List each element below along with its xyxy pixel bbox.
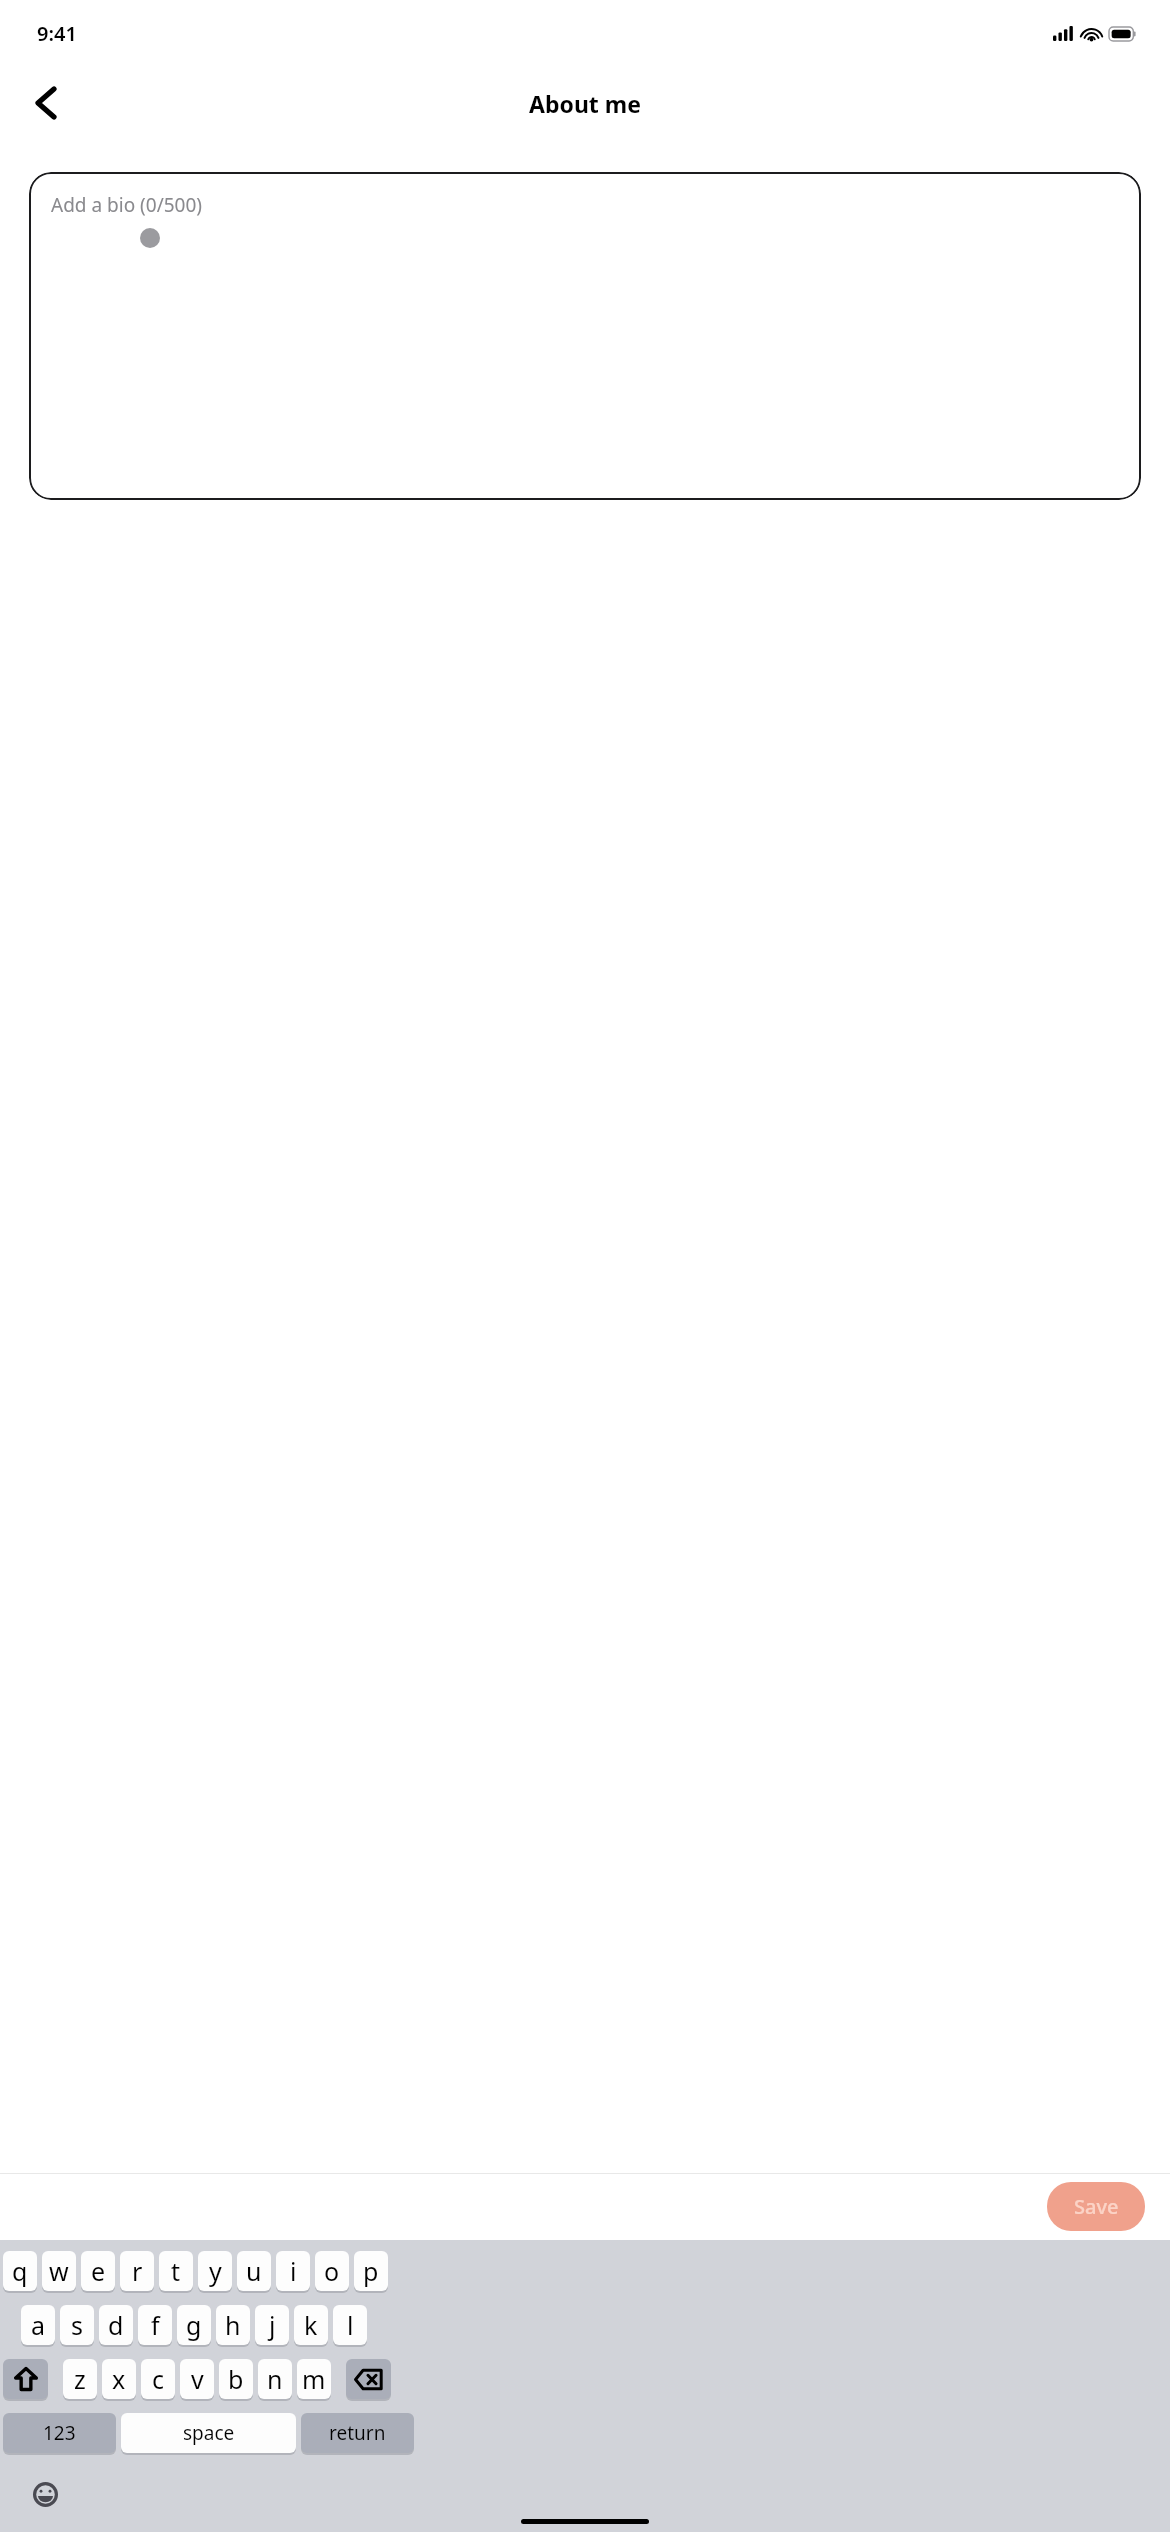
button[interactable]: n — [258, 2359, 292, 2401]
staticText: j — [269, 2308, 276, 2342]
button[interactable]: q — [3, 2251, 37, 2293]
staticText: c — [152, 2362, 165, 2396]
button[interactable]: i — [276, 2251, 310, 2293]
button[interactable]: e — [81, 2251, 115, 2293]
button[interactable]: v — [180, 2359, 214, 2401]
other: Backspace — [346, 2359, 391, 2401]
button[interactable]: b — [219, 2359, 253, 2401]
staticText: q — [12, 2254, 28, 2288]
button[interactable]: g — [177, 2305, 211, 2347]
staticText: l — [347, 2308, 354, 2342]
button[interactable] — [346, 2359, 391, 2401]
staticText: f — [151, 2308, 160, 2342]
button[interactable]: Emoji keyboard — [22, 2471, 68, 2517]
staticText: return — [329, 2420, 386, 2446]
button[interactable]: p — [354, 2251, 388, 2293]
button[interactable]: l — [333, 2305, 367, 2347]
staticText: d — [108, 2308, 124, 2342]
staticText: o — [324, 2254, 340, 2288]
staticText: 123 — [43, 2420, 76, 2446]
staticText: Add a bio (0/500) — [51, 192, 203, 218]
staticText: b — [228, 2362, 244, 2396]
button[interactable]: 123 — [3, 2413, 116, 2455]
staticText: i — [290, 2254, 297, 2288]
button[interactable]: m — [297, 2359, 331, 2401]
staticText: p — [363, 2254, 379, 2288]
button[interactable]: Add a bio (0/500) — [29, 172, 1141, 500]
staticText: z — [74, 2362, 86, 2396]
staticText: v — [191, 2362, 204, 2396]
staticText: k — [304, 2308, 318, 2342]
staticText: e — [91, 2254, 106, 2288]
button[interactable]: f — [138, 2305, 172, 2347]
button[interactable]: space — [121, 2413, 296, 2455]
button[interactable] — [3, 2359, 48, 2401]
staticText: space — [183, 2420, 235, 2446]
button[interactable]: a — [21, 2305, 55, 2347]
button[interactable]: r — [120, 2251, 154, 2293]
button[interactable]: j — [255, 2305, 289, 2347]
button[interactable]: c — [141, 2359, 175, 2401]
staticText: y — [209, 2254, 222, 2288]
staticText: n — [267, 2362, 283, 2396]
staticText: Save — [1074, 2193, 1119, 2220]
button[interactable]: Back — [14, 71, 78, 135]
button[interactable]: o — [315, 2251, 349, 2293]
other: Shift — [3, 2359, 48, 2401]
button[interactable]: s — [60, 2305, 94, 2347]
staticText: u — [246, 2254, 262, 2288]
button[interactable]: k — [294, 2305, 328, 2347]
staticText: g — [186, 2308, 202, 2342]
staticText: t — [171, 2254, 181, 2288]
button[interactable]: d — [99, 2305, 133, 2347]
button[interactable]: return — [301, 2413, 414, 2455]
button[interactable]: t — [159, 2251, 193, 2293]
button[interactable]: u — [237, 2251, 271, 2293]
button[interactable]: x — [102, 2359, 136, 2401]
staticText: 9:41 — [37, 20, 77, 47]
staticText: r — [132, 2254, 143, 2288]
staticText: m — [302, 2362, 326, 2396]
staticText: w — [49, 2254, 69, 2288]
button[interactable]: z — [63, 2359, 97, 2401]
staticText: a — [31, 2308, 46, 2342]
staticText: h — [225, 2308, 241, 2342]
staticText: s — [71, 2308, 83, 2342]
button[interactable]: Save — [1047, 2182, 1145, 2231]
button[interactable]: y — [198, 2251, 232, 2293]
button[interactable]: h — [216, 2305, 250, 2347]
button[interactable]: w — [42, 2251, 76, 2293]
staticText: About me — [529, 88, 641, 119]
staticText: x — [112, 2362, 126, 2396]
